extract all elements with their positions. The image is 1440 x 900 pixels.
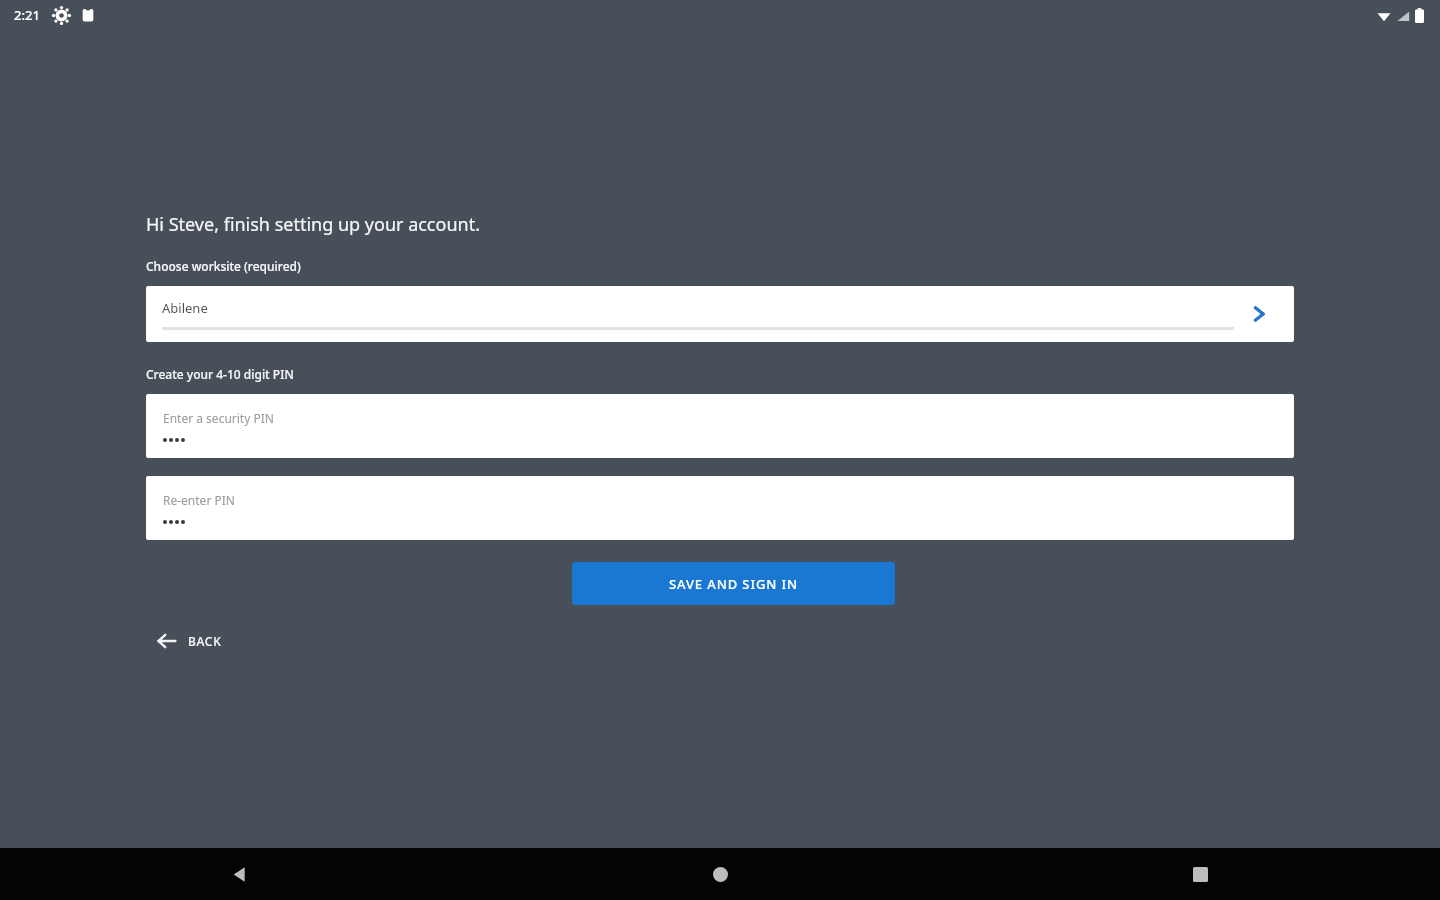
staticText: Abilene — [162, 299, 208, 317]
staticText: 2:21 — [14, 6, 40, 24]
button[interactable]: Abilene — [146, 286, 1294, 342]
staticText: SAVE AND SIGN IN — [669, 575, 799, 593]
staticText: Create your 4-10 digit PIN — [146, 366, 294, 382]
button[interactable]: Recent apps — [960, 848, 1440, 900]
staticText: BACK — [188, 633, 222, 649]
staticText: Re-enter PIN — [163, 492, 235, 508]
staticText: Choose worksite (required) — [146, 258, 301, 274]
button[interactable]: Enter a security PIN — [146, 394, 1294, 458]
other: Choose worksite — [1246, 301, 1272, 327]
button[interactable]: Home — [480, 848, 960, 900]
staticText: Hi Steve, finish setting up your account… — [146, 212, 480, 237]
button[interactable]: Re-enter PIN — [146, 476, 1294, 540]
staticText: Enter a security PIN — [163, 410, 274, 426]
button[interactable]: Back — [0, 848, 480, 900]
button[interactable]: BACK — [146, 622, 222, 660]
button[interactable]: SAVE AND SIGN IN — [572, 562, 895, 605]
